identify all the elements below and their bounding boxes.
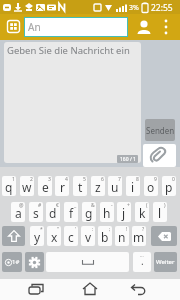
button[interactable] bbox=[46, 252, 129, 272]
staticText: @ bbox=[19, 202, 24, 209]
button[interactable]: s bbox=[29, 202, 43, 222]
staticText: g bbox=[85, 205, 93, 221]
staticText: z bbox=[95, 179, 101, 195]
staticText: n bbox=[118, 229, 126, 245]
staticText: : bbox=[92, 226, 94, 233]
staticText: 6 bbox=[101, 176, 104, 183]
staticText: Weiter bbox=[156, 258, 175, 266]
button[interactable]: q bbox=[2, 176, 16, 196]
staticText: 1 bbox=[12, 176, 15, 183]
button[interactable]: e bbox=[38, 176, 52, 196]
button[interactable]: h bbox=[100, 202, 114, 222]
staticText: " bbox=[57, 226, 60, 233]
staticText: ? bbox=[142, 226, 145, 233]
staticText: ) bbox=[164, 202, 166, 209]
staticText: 7 bbox=[118, 176, 121, 183]
staticText: * bbox=[40, 226, 43, 233]
staticText: 1# bbox=[12, 258, 20, 266]
button[interactable]: l bbox=[153, 202, 167, 222]
button[interactable]: v bbox=[81, 226, 95, 246]
staticText: t bbox=[78, 179, 83, 195]
button[interactable] bbox=[25, 252, 44, 272]
button[interactable] bbox=[7, 20, 20, 33]
staticText: ; bbox=[109, 226, 111, 233]
staticText: An bbox=[28, 20, 41, 34]
button[interactable]: n bbox=[115, 226, 129, 246]
button[interactable]: Geben Sie die Nachricht ein bbox=[4, 42, 141, 163]
staticText: 0 bbox=[172, 176, 175, 183]
staticText: 8 bbox=[136, 176, 139, 183]
staticText: ' bbox=[75, 226, 77, 233]
staticText: ! bbox=[126, 226, 128, 233]
button[interactable]: g bbox=[82, 202, 96, 222]
button[interactable] bbox=[151, 226, 177, 246]
button[interactable] bbox=[158, 17, 174, 37]
staticText: ( bbox=[146, 202, 148, 209]
staticText: w bbox=[22, 179, 32, 195]
staticText: j bbox=[122, 205, 126, 221]
button[interactable]: d bbox=[46, 202, 60, 222]
button[interactable] bbox=[135, 18, 153, 36]
button[interactable]: y bbox=[30, 226, 44, 246]
staticText: k bbox=[139, 205, 146, 221]
staticText: . bbox=[141, 254, 144, 268]
staticText: o bbox=[147, 179, 155, 195]
button[interactable] bbox=[82, 282, 98, 296]
button[interactable]: c bbox=[64, 226, 78, 246]
staticText: 9 bbox=[154, 176, 157, 183]
button[interactable]: r bbox=[55, 176, 69, 196]
button[interactable]: m bbox=[132, 226, 146, 246]
staticText: q bbox=[5, 179, 13, 195]
button[interactable] bbox=[28, 283, 44, 296]
staticText: 4 bbox=[65, 176, 68, 183]
staticText: a bbox=[15, 205, 22, 221]
button[interactable]: t bbox=[73, 176, 87, 196]
staticText: + bbox=[127, 202, 130, 209]
staticText: u bbox=[111, 179, 119, 195]
staticText: m bbox=[133, 229, 145, 245]
staticText: y bbox=[34, 229, 41, 245]
button[interactable]: Senden bbox=[145, 119, 175, 141]
button[interactable]: i bbox=[126, 176, 140, 196]
staticText: d bbox=[49, 205, 57, 221]
button[interactable]: x bbox=[47, 226, 61, 246]
button[interactable]: An bbox=[24, 17, 128, 37]
button[interactable]: b bbox=[98, 226, 112, 246]
button[interactable]: o bbox=[144, 176, 158, 196]
button[interactable]: w bbox=[20, 176, 34, 196]
button[interactable]: . bbox=[133, 252, 151, 272]
staticText: 22:55 bbox=[151, 2, 173, 14]
staticText: b bbox=[101, 229, 109, 245]
staticText: 3 bbox=[48, 176, 51, 183]
button[interactable]: k bbox=[135, 202, 149, 222]
button[interactable]: a bbox=[11, 202, 25, 222]
staticText: Geben Sie die Nachricht ein bbox=[7, 44, 130, 57]
button[interactable]: j bbox=[117, 202, 131, 222]
button[interactable]: u bbox=[108, 176, 122, 196]
button[interactable]: z bbox=[91, 176, 105, 196]
staticText: & bbox=[91, 202, 95, 209]
button[interactable]: Weiter bbox=[154, 252, 177, 272]
staticText: c bbox=[68, 229, 74, 245]
staticText: - bbox=[111, 202, 113, 209]
staticText: _ bbox=[74, 202, 77, 209]
staticText: € bbox=[56, 202, 59, 209]
button[interactable] bbox=[143, 144, 176, 167]
staticText: Senden bbox=[146, 125, 175, 136]
button[interactable]: f bbox=[64, 202, 78, 222]
button[interactable]: p bbox=[162, 176, 176, 196]
staticText: r bbox=[60, 179, 65, 195]
staticText: 2 bbox=[30, 176, 33, 183]
button[interactable] bbox=[130, 283, 146, 296]
staticText: i bbox=[131, 179, 135, 195]
button[interactable] bbox=[2, 226, 25, 246]
staticText: f bbox=[69, 205, 74, 221]
staticText: ... bbox=[140, 252, 144, 258]
staticText: s bbox=[33, 205, 39, 221]
staticText: 5 bbox=[83, 176, 86, 183]
staticText: h bbox=[103, 205, 111, 221]
staticText: l bbox=[158, 205, 162, 221]
staticText: x bbox=[51, 229, 58, 245]
staticText: 160 / 1 bbox=[120, 156, 136, 163]
button[interactable]: 1# bbox=[2, 252, 22, 272]
